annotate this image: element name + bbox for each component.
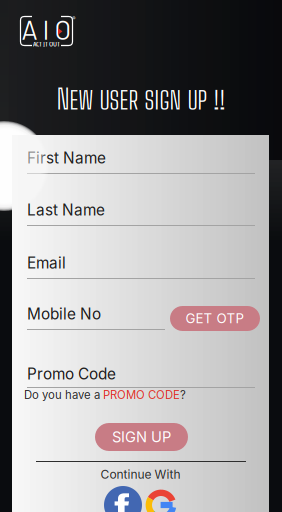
staticText: Last Name [27,201,105,219]
staticText: New user sign up !! [56,82,225,115]
staticText: ? [180,388,186,402]
staticText: Mobile No [27,305,101,323]
staticText: SIGN UP [112,428,171,446]
staticText: Continue With [100,467,180,481]
staticText: First Name [27,149,106,167]
staticText: Do you have a [24,388,103,402]
staticText: A I O [21,13,71,45]
staticText: ® [72,15,76,21]
button[interactable]: Do you have a [24,388,186,402]
button[interactable]: Continue with Facebook [104,486,142,512]
button[interactable]: SIGN UP [95,423,188,451]
staticText: Promo Code [27,365,116,383]
button[interactable]: GET OTP [170,306,260,331]
button[interactable]: Continue with Google [144,486,178,512]
staticText: ACT IT OUT [33,39,60,49]
staticText: Email [27,254,66,272]
staticText: PROMO CODE [103,388,180,402]
staticText: GET OTP [185,310,244,326]
